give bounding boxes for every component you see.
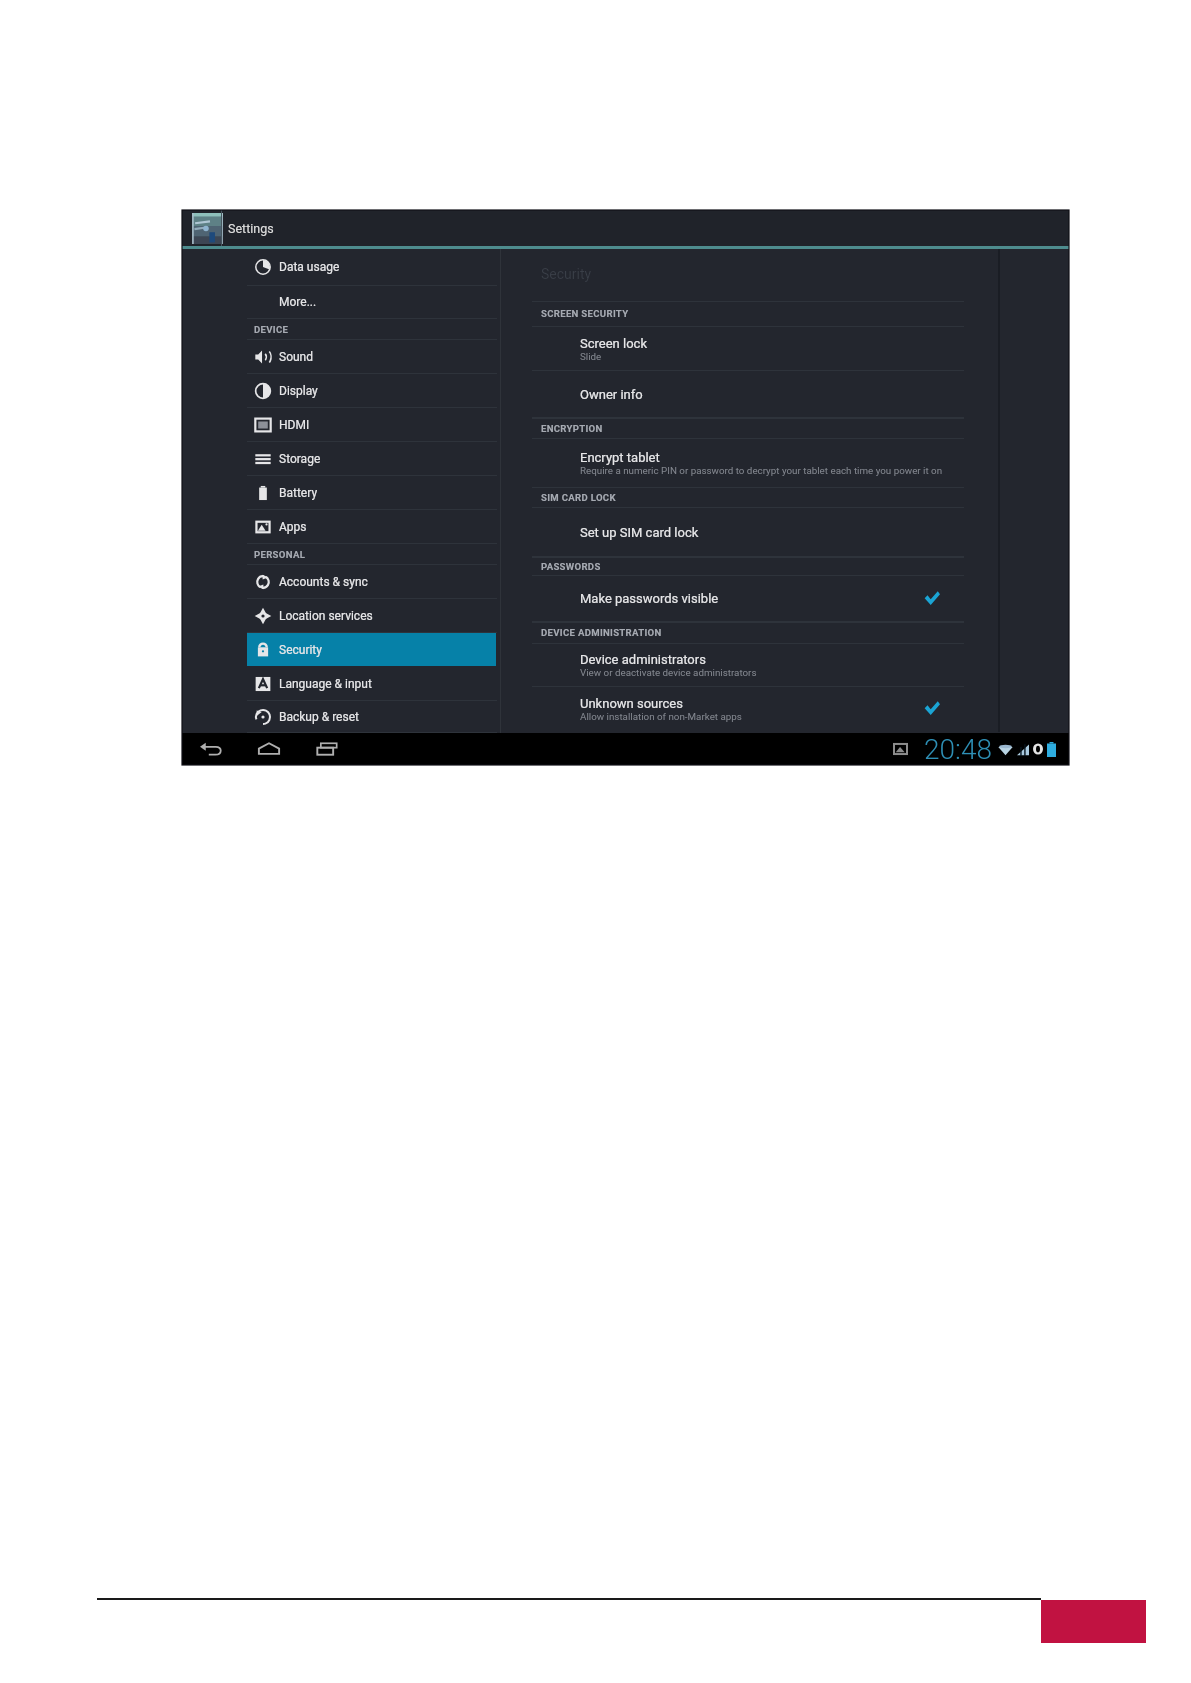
staticText: Owner info bbox=[580, 387, 643, 402]
button[interactable]: Make passwords visible bbox=[532, 576, 964, 622]
staticText: More... bbox=[279, 295, 317, 309]
button[interactable]: Security bbox=[247, 633, 496, 666]
staticText: Require a numeric PIN or password to dec… bbox=[580, 465, 943, 476]
button[interactable]: Language & input bbox=[247, 667, 496, 700]
button[interactable]: Accounts & sync bbox=[247, 565, 496, 598]
staticText: View or deactivate device administrators bbox=[580, 667, 757, 678]
staticText: PASSWORDS bbox=[541, 561, 601, 572]
staticText: Screen lock bbox=[580, 336, 647, 351]
button[interactable]: Back bbox=[194, 733, 228, 765]
staticText: Security bbox=[279, 643, 322, 657]
staticText: DEVICE bbox=[254, 324, 289, 335]
button[interactable]: Location services bbox=[247, 599, 496, 632]
staticText: Backup & reset bbox=[279, 710, 359, 724]
staticText: Battery bbox=[279, 486, 318, 500]
button[interactable]: Data usage bbox=[247, 249, 496, 285]
staticText: HDMI bbox=[279, 418, 310, 432]
staticText: Language & input bbox=[279, 677, 372, 691]
staticText: DEVICE ADMINISTRATION bbox=[541, 627, 662, 638]
staticText: Data usage bbox=[279, 260, 340, 274]
staticText: ENCRYPTION bbox=[541, 423, 603, 434]
button[interactable]: Device administrators bbox=[532, 644, 964, 687]
staticText: Display bbox=[279, 384, 318, 398]
button[interactable]: Set up SIM card lock bbox=[532, 508, 964, 557]
staticText: Storage bbox=[279, 452, 321, 466]
staticText: Location services bbox=[279, 609, 373, 623]
staticText: Make passwords visible bbox=[580, 591, 719, 606]
staticText: Accounts & sync bbox=[279, 575, 368, 589]
staticText: Allow installation of non-Market apps bbox=[580, 711, 742, 722]
staticText: SIM CARD LOCK bbox=[541, 492, 616, 503]
staticText: Sound bbox=[279, 350, 313, 364]
staticText: Slide bbox=[580, 351, 602, 362]
button[interactable]: Screen lock bbox=[532, 327, 964, 371]
staticText: Apps bbox=[279, 520, 307, 534]
staticText: Unknown sources bbox=[580, 696, 683, 711]
button[interactable]: Storage bbox=[247, 442, 496, 475]
staticText: Encrypt tablet bbox=[580, 450, 660, 465]
staticText: Security bbox=[541, 266, 592, 282]
button[interactable]: Unknown sources bbox=[532, 687, 964, 731]
staticText: Settings bbox=[228, 221, 274, 236]
button[interactable]: More... bbox=[247, 286, 496, 318]
button[interactable]: HDMI bbox=[247, 408, 496, 441]
button[interactable]: Battery bbox=[247, 476, 496, 509]
button[interactable]: Recent apps bbox=[310, 733, 344, 765]
staticText: 20:48 bbox=[924, 733, 993, 765]
staticText: PERSONAL bbox=[254, 549, 306, 560]
staticText: SCREEN SECURITY bbox=[541, 308, 629, 319]
button[interactable]: Backup & reset bbox=[247, 701, 496, 732]
staticText: Set up SIM card lock bbox=[580, 525, 699, 540]
button[interactable]: Home bbox=[252, 733, 286, 765]
button[interactable]: Settings, navigate up bbox=[192, 213, 284, 244]
button[interactable]: Encrypt tablet bbox=[532, 439, 964, 487]
button[interactable]: Sound bbox=[247, 340, 496, 373]
button[interactable]: Owner info bbox=[532, 371, 964, 418]
staticText: Device administrators bbox=[580, 652, 706, 667]
button[interactable]: Display bbox=[247, 374, 496, 407]
button[interactable]: Apps bbox=[247, 510, 496, 543]
